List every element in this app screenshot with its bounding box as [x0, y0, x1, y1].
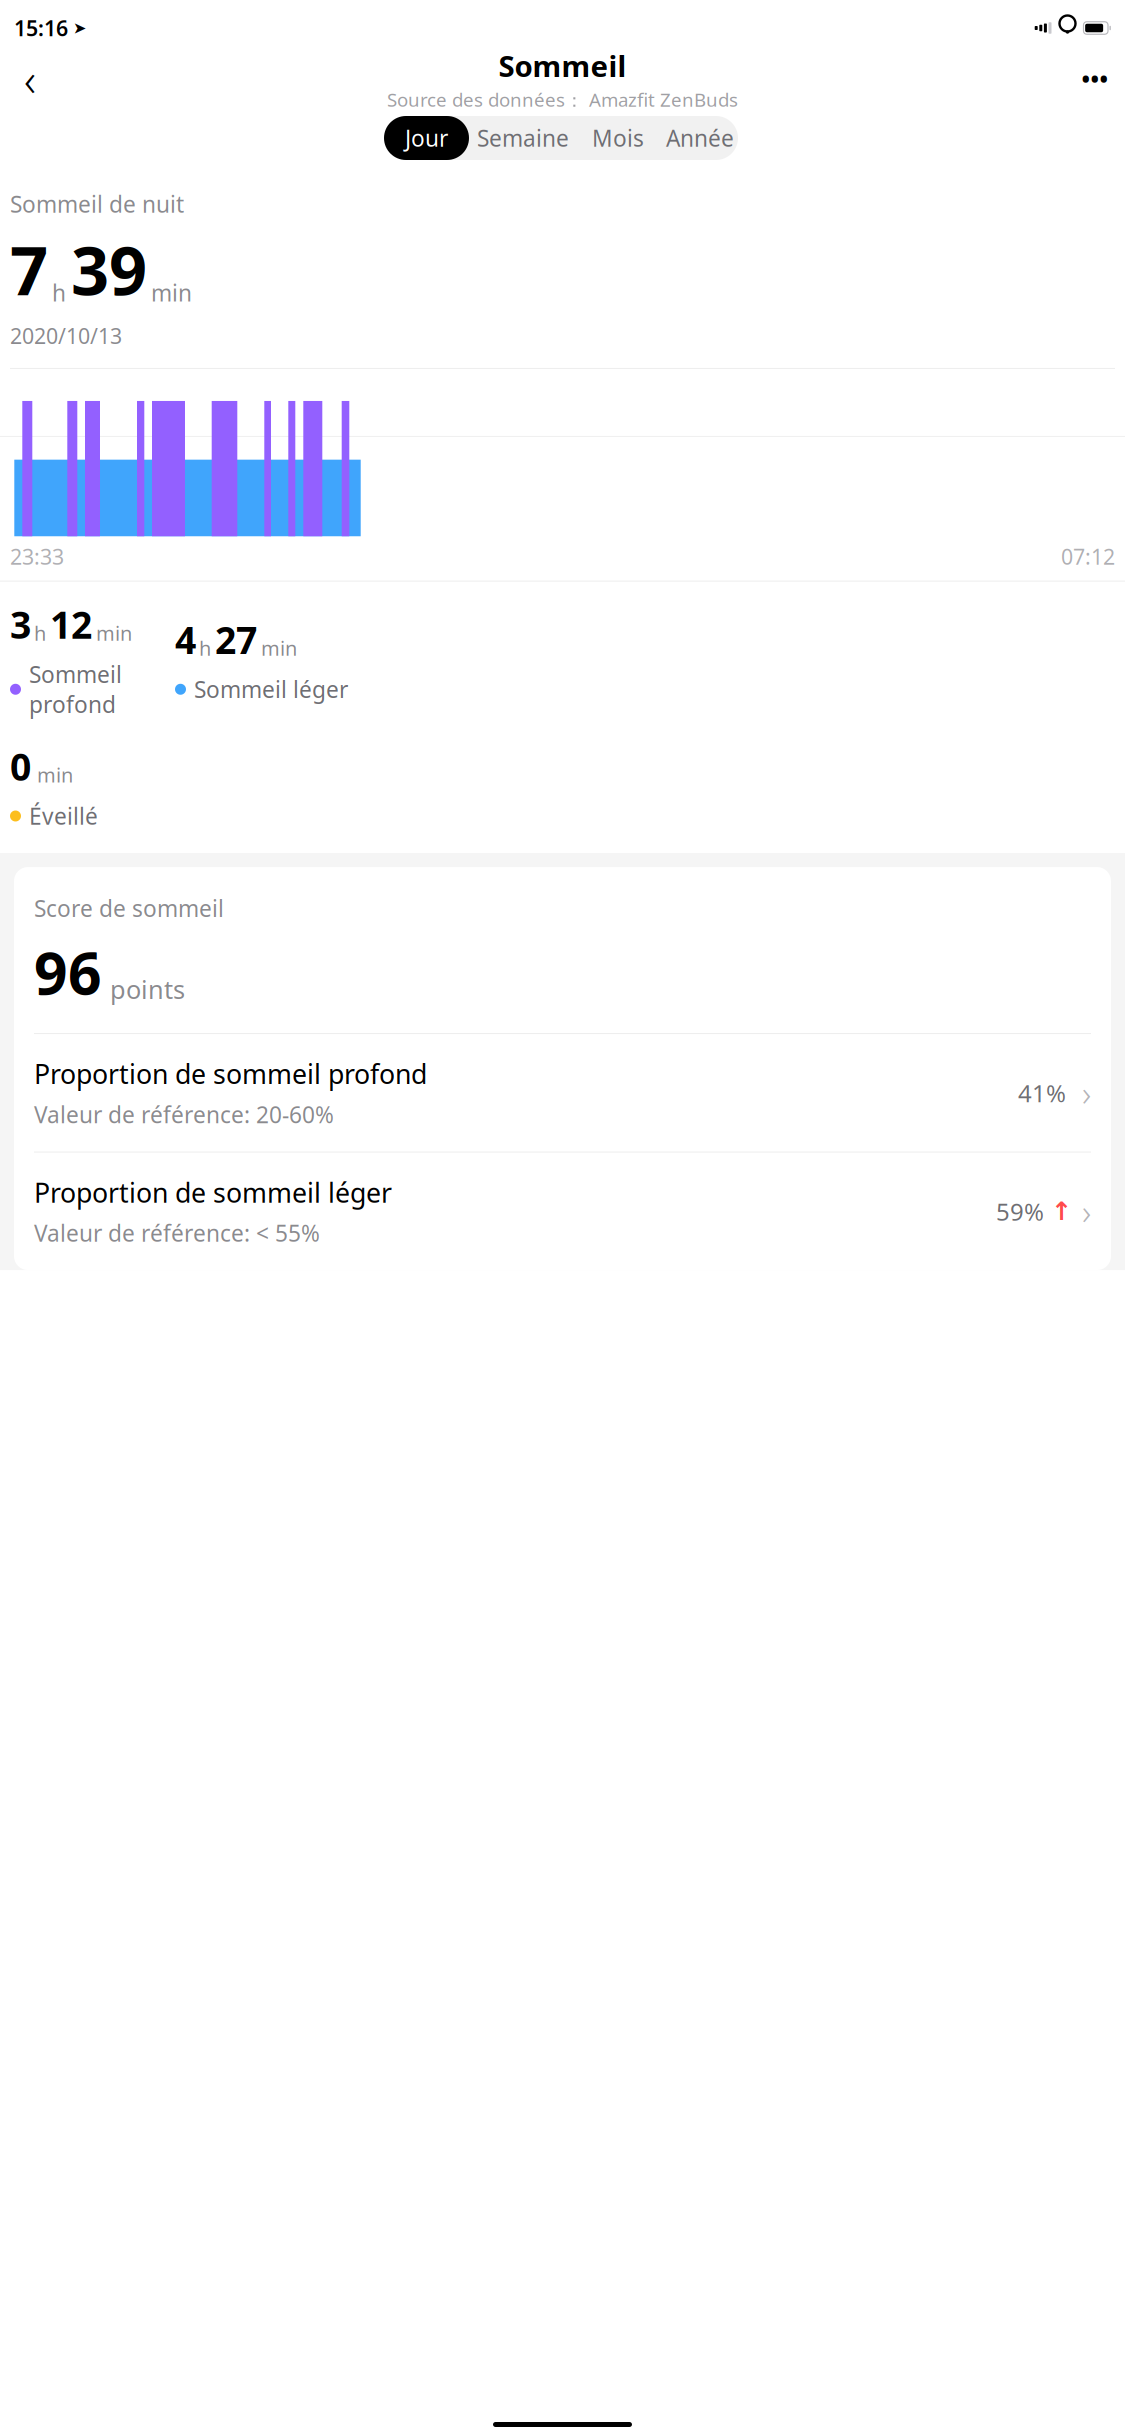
staticText: Sommeil profond: [29, 659, 122, 719]
staticText: Éveillé: [29, 801, 98, 831]
staticText: Jour: [405, 123, 448, 153]
staticText: points: [110, 972, 185, 1006]
button[interactable]: Back: [8, 57, 52, 101]
staticText: min: [261, 635, 297, 661]
button[interactable]: Proportion de sommeil léger: [34, 1153, 1091, 1270]
staticText: 0: [10, 741, 31, 791]
staticText: 12: [50, 600, 92, 649]
staticText: 2020/10/13: [10, 322, 122, 350]
staticText: ‹: [24, 49, 36, 109]
staticText: 07:12: [1061, 542, 1115, 571]
staticText: h: [34, 620, 46, 646]
staticText: Proportion de sommeil léger: [34, 1175, 392, 1210]
staticText: Proportion de sommeil profond: [34, 1056, 427, 1091]
staticText: Source des données： Amazfit ZenBuds: [387, 87, 738, 112]
button[interactable]: Jour: [384, 116, 469, 160]
staticText: ›: [1082, 1070, 1091, 1116]
staticText: 23:33: [10, 542, 64, 571]
staticText: 3: [10, 600, 31, 649]
staticText: 27: [215, 615, 257, 664]
staticText: •••: [1081, 64, 1108, 94]
staticText: 59%: [996, 1195, 1044, 1227]
staticText: Score de sommeil: [34, 893, 224, 923]
button[interactable]: Proportion de sommeil profond: [34, 1034, 1091, 1152]
staticText: Valeur de référence: 20-60%: [34, 1099, 334, 1130]
staticText: Valeur de référence: < 55%: [34, 1218, 320, 1248]
button[interactable]: Semaine: [469, 116, 577, 160]
staticText: min: [151, 277, 192, 308]
staticText: 41%: [1018, 1077, 1066, 1109]
button[interactable]: Année: [659, 116, 741, 160]
staticText: h: [199, 635, 211, 661]
staticText: min: [37, 761, 73, 788]
staticText: ➤: [68, 19, 86, 37]
staticText: 15:16: [14, 14, 68, 42]
staticText: 96: [34, 933, 102, 1011]
staticText: 4: [175, 615, 196, 664]
button[interactable]: More options: [1073, 57, 1117, 101]
staticText: Mois: [592, 123, 644, 153]
staticText: Sommeil: [498, 46, 626, 85]
staticText: Sommeil de nuit: [10, 189, 184, 219]
staticText: min: [96, 620, 132, 646]
staticText: Année: [666, 123, 734, 153]
staticText: 7: [10, 225, 48, 314]
button[interactable]: Mois: [577, 116, 659, 160]
staticText: 39: [71, 225, 147, 314]
staticText: h: [52, 277, 66, 308]
staticText: Semaine: [477, 123, 569, 153]
staticText: ↑: [1051, 1197, 1072, 1226]
staticText: ›: [1082, 1188, 1091, 1234]
staticText: Sommeil léger: [194, 674, 348, 704]
